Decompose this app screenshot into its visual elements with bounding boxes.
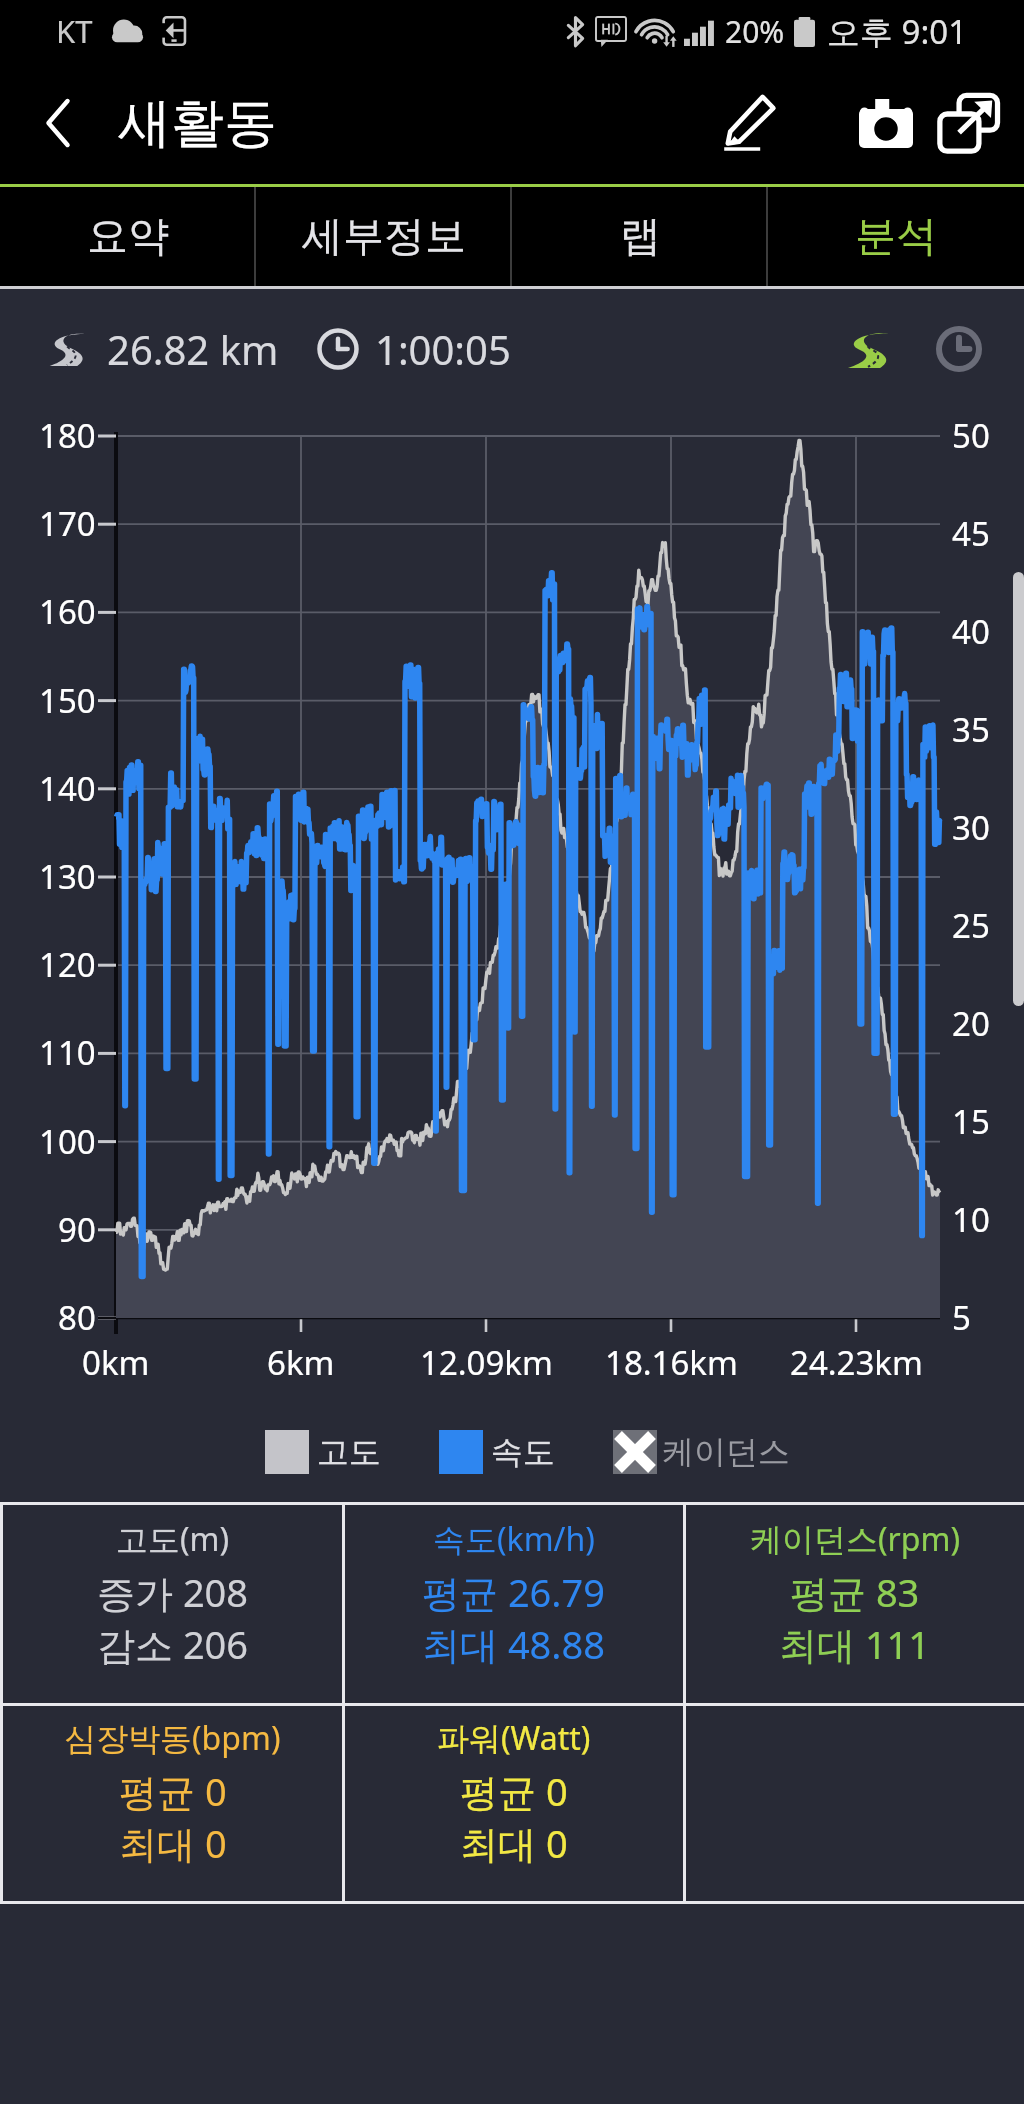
staticText: 12.09km xyxy=(420,1340,553,1385)
staticText: 25 xyxy=(952,903,990,948)
button[interactable]: 파워(Watt) xyxy=(345,1706,683,1879)
staticText: 10 xyxy=(952,1197,990,1242)
staticText: 180 xyxy=(39,413,96,458)
staticText: 평균 0 xyxy=(119,1765,227,1817)
staticText: 100 xyxy=(39,1119,96,1164)
staticText: 새활동 xyxy=(118,90,277,157)
staticText: KT xyxy=(56,10,93,52)
staticText: 평균 0 xyxy=(460,1765,568,1817)
staticText: 40 xyxy=(952,609,990,654)
staticText: 20 xyxy=(952,1001,990,1046)
button[interactable]: Back xyxy=(0,62,116,184)
staticText: 140 xyxy=(39,766,96,811)
button[interactable]: 요약 xyxy=(0,187,256,286)
staticText: 80 xyxy=(58,1295,96,1340)
staticText: 150 xyxy=(39,678,96,723)
staticText: 케이던스(rpm) xyxy=(750,1517,961,1561)
staticText: 24.23km xyxy=(790,1340,923,1385)
staticText: 5 xyxy=(952,1295,971,1340)
button[interactable]: 심장박동(bpm) xyxy=(3,1706,342,1879)
staticText: 1:00:05 xyxy=(375,322,511,376)
staticText: 속도 xyxy=(491,1432,555,1472)
staticText: 감소 206 xyxy=(97,1618,249,1670)
staticText: 파워(Watt) xyxy=(437,1716,591,1760)
staticText: 평균 26.79 xyxy=(422,1566,606,1618)
staticText: 120 xyxy=(39,942,96,987)
staticText: 요약 xyxy=(87,211,169,263)
staticText: 오후 9:01 xyxy=(827,9,968,54)
staticText: 0km xyxy=(82,1340,150,1385)
button[interactable]: 분석 xyxy=(768,187,1024,286)
staticText: 20% xyxy=(725,11,785,52)
staticText: 90 xyxy=(58,1207,96,1252)
button[interactable]: 케이던스(rpm) xyxy=(686,1505,1024,1681)
staticText: 속도(km/h) xyxy=(433,1517,595,1561)
button[interactable]: Distance graph xyxy=(834,312,908,386)
staticText: 35 xyxy=(952,707,990,752)
button[interactable]: Camera xyxy=(823,62,925,184)
staticText: 최대 0 xyxy=(119,1817,227,1869)
button[interactable]: Share xyxy=(925,62,1012,184)
staticText: 최대 0 xyxy=(460,1817,568,1869)
staticText: 18.16km xyxy=(605,1340,738,1385)
staticText: 분석 xyxy=(855,211,937,263)
staticText: 케이던스 xyxy=(662,1432,790,1472)
button[interactable]: Edit xyxy=(695,62,795,184)
staticText: 증가 208 xyxy=(97,1566,249,1618)
button[interactable]: 랩 xyxy=(512,187,768,286)
staticText: 130 xyxy=(39,854,96,899)
staticText: 심장박동(bpm) xyxy=(64,1716,281,1760)
staticText: 랩 xyxy=(620,211,661,263)
button[interactable]: 세부정보 xyxy=(256,187,512,286)
staticText: 15 xyxy=(952,1099,990,1144)
staticText: 최대 48.88 xyxy=(422,1618,606,1670)
staticText: 45 xyxy=(952,511,990,556)
button[interactable]: Time graph xyxy=(922,312,996,386)
staticText: 고도(m) xyxy=(116,1517,230,1561)
staticText: 50 xyxy=(952,413,990,458)
staticText: 26.82 km xyxy=(107,322,279,376)
staticText: 평균 83 xyxy=(790,1566,920,1618)
staticText: 110 xyxy=(39,1030,96,1075)
staticText: 최대 111 xyxy=(779,1618,931,1670)
staticText: 170 xyxy=(39,501,96,546)
staticText: 30 xyxy=(952,805,990,850)
button[interactable]: 고도(m) xyxy=(3,1505,342,1681)
staticText: 세부정보 xyxy=(302,211,466,263)
staticText: 6km xyxy=(267,1340,335,1385)
staticText: 160 xyxy=(39,589,96,634)
staticText: 고도 xyxy=(317,1432,381,1472)
button[interactable]: 속도(km/h) xyxy=(345,1505,683,1681)
